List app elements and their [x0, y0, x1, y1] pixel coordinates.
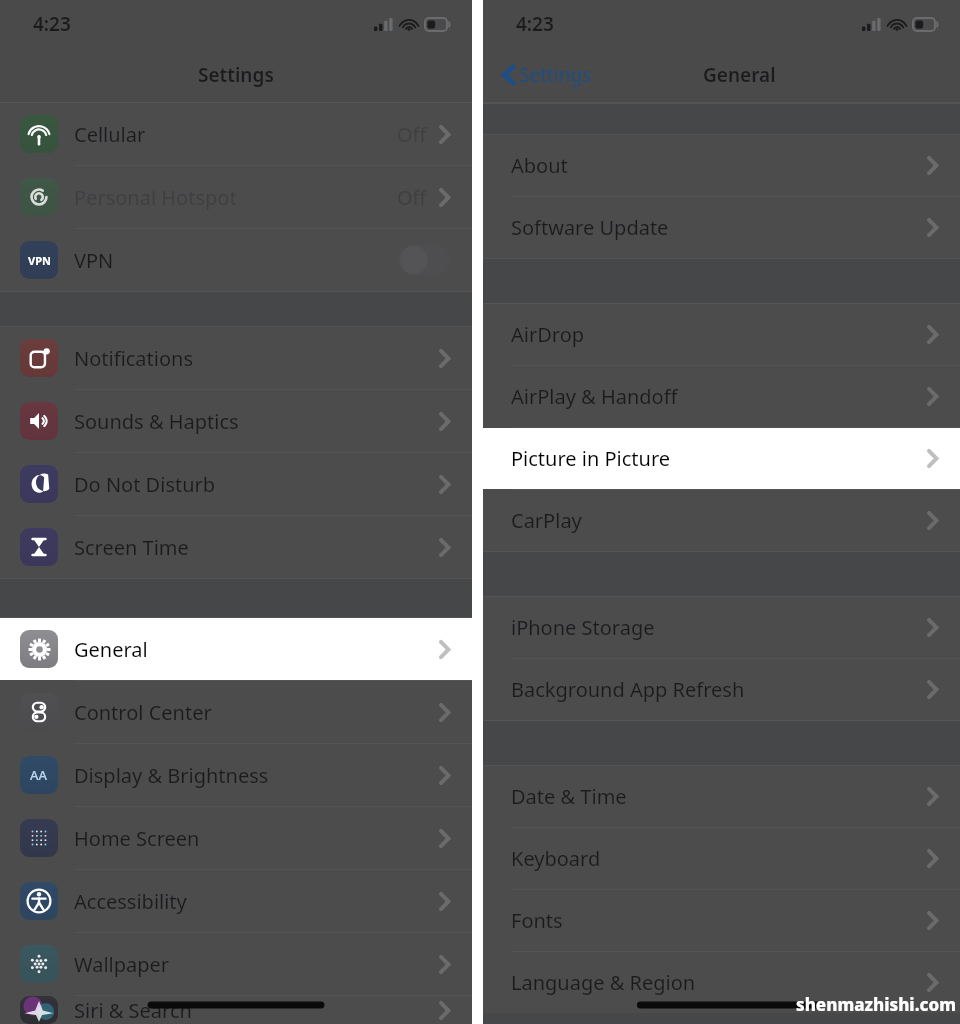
staticText: Off	[397, 184, 427, 211]
staticText: Settings	[198, 62, 274, 88]
staticText: shenmazhishi.com	[796, 993, 956, 1016]
button[interactable]: AirPlay & Handoff	[483, 366, 960, 427]
staticText: iPhone Storage	[511, 614, 655, 641]
button[interactable]: Sounds & Haptics	[0, 390, 472, 452]
staticText: Keyboard	[511, 845, 601, 872]
staticText: Display & Brightness	[74, 762, 269, 789]
staticText: Fonts	[511, 907, 563, 934]
button[interactable]: Personal Hotspot	[0, 166, 472, 228]
staticText: 4:23	[33, 11, 71, 37]
staticText: Sounds & Haptics	[74, 408, 239, 435]
button[interactable]: About	[483, 135, 960, 196]
button[interactable]: VPN toggle	[398, 244, 450, 276]
button[interactable]: Background App Refresh	[483, 659, 960, 720]
staticText: Wallpaper	[74, 951, 170, 978]
button[interactable]: Accessibility	[0, 870, 472, 932]
staticText: Home Screen	[74, 825, 200, 852]
staticText: Control Center	[74, 699, 212, 726]
staticText: Accessibility	[74, 888, 187, 915]
button[interactable]: Screen Time	[0, 516, 472, 578]
staticText: CarPlay	[511, 507, 582, 534]
staticText: Settings	[519, 62, 592, 88]
staticText: Background App Refresh	[511, 676, 745, 703]
staticText: 4:23	[516, 11, 554, 37]
button[interactable]: Cellular	[0, 103, 472, 165]
staticText: AirDrop	[511, 321, 585, 348]
button[interactable]: iPhone Storage	[483, 597, 960, 658]
button[interactable]: CarPlay	[483, 490, 960, 551]
button[interactable]: Language & Region	[483, 952, 960, 1013]
button[interactable]: Notifications	[0, 327, 472, 389]
staticText: Picture in Picture	[511, 445, 671, 472]
staticText: Screen Time	[74, 534, 189, 561]
button[interactable]: AirDrop	[483, 304, 960, 365]
staticText: Notifications	[74, 345, 193, 372]
button[interactable]: VPN	[0, 229, 472, 291]
staticText: General	[703, 62, 776, 88]
staticText: Cellular	[74, 121, 146, 148]
staticText: AirPlay & Handoff	[511, 383, 678, 410]
staticText: VPN	[28, 253, 51, 268]
button[interactable]: Control Center	[0, 681, 472, 743]
staticText: Language & Region	[511, 969, 696, 996]
staticText: Software Update	[511, 214, 669, 241]
button[interactable]: Do Not Disturb	[0, 453, 472, 515]
button[interactable]: Settings	[483, 56, 604, 94]
button[interactable]: Software Update	[483, 197, 960, 258]
staticText: Siri & Search	[74, 997, 192, 1024]
staticText: Off	[397, 121, 427, 148]
button[interactable]: Siri & Search	[0, 996, 472, 1024]
button[interactable]: Fonts	[483, 890, 960, 951]
button[interactable]: Keyboard	[483, 828, 960, 889]
staticText: Date & Time	[511, 783, 627, 810]
button[interactable]: Picture in Picture	[483, 428, 960, 489]
button[interactable]: AA	[0, 744, 472, 806]
button[interactable]: General	[0, 618, 472, 680]
staticText: Do Not Disturb	[74, 471, 216, 498]
staticText: AA	[30, 766, 48, 784]
button[interactable]: Wallpaper	[0, 933, 472, 995]
staticText: Personal Hotspot	[74, 184, 237, 211]
staticText: About	[511, 152, 568, 179]
button[interactable]: Home Screen	[0, 807, 472, 869]
button[interactable]: Date & Time	[483, 766, 960, 827]
staticText: General	[74, 636, 148, 663]
staticText: VPN	[74, 247, 114, 274]
